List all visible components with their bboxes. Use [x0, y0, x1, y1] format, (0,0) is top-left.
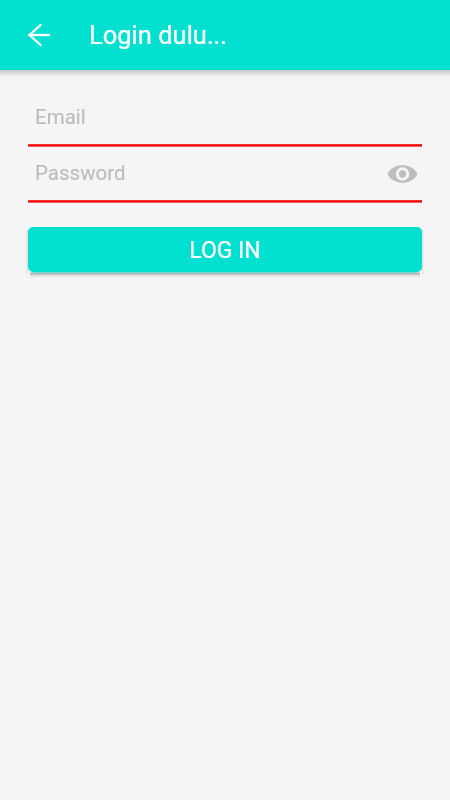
staticText: Password	[35, 161, 126, 185]
staticText: LOG IN	[189, 237, 261, 264]
button[interactable]: LOG IN	[28, 227, 422, 272]
button[interactable]: Back	[16, 11, 64, 59]
staticText: Login dulu...	[89, 20, 228, 50]
staticText: Email	[35, 105, 86, 129]
button[interactable]: Password	[28, 157, 422, 203]
button[interactable]: Show password	[378, 150, 426, 198]
button[interactable]: Email	[28, 101, 422, 147]
